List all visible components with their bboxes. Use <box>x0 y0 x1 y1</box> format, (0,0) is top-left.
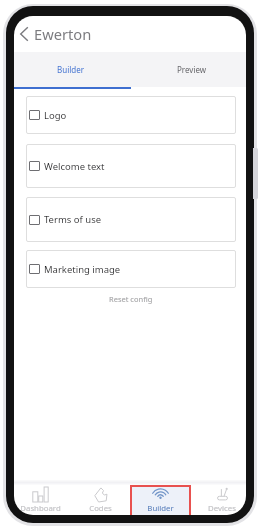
staticText: Welcome text <box>44 160 105 173</box>
button[interactable]: Back <box>14 16 33 52</box>
staticText: Codes <box>89 503 112 514</box>
button[interactable]: Terms of use <box>26 197 236 242</box>
staticText: Ewerton <box>34 24 92 44</box>
button[interactable]: Codes <box>70 485 130 515</box>
button[interactable]: Logo <box>26 96 236 134</box>
staticText: Dashboard <box>20 503 61 514</box>
staticText: Terms of use <box>44 213 102 226</box>
staticText: Logo <box>44 109 67 122</box>
button[interactable]: Marketing image <box>26 250 236 288</box>
staticText: Builder <box>147 503 174 514</box>
button[interactable]: Builder <box>130 485 191 515</box>
button[interactable]: Dashboard <box>14 485 70 515</box>
staticText: Devices <box>208 503 236 514</box>
button[interactable]: Devices <box>191 485 246 515</box>
staticText: Builder <box>57 64 85 75</box>
button[interactable]: Welcome text <box>26 144 236 188</box>
staticText: Marketing image <box>44 263 121 276</box>
button[interactable]: Preview <box>131 52 246 87</box>
staticText: Preview <box>177 64 207 75</box>
button[interactable]: Reset config <box>109 294 153 304</box>
button[interactable]: Builder <box>14 52 131 87</box>
